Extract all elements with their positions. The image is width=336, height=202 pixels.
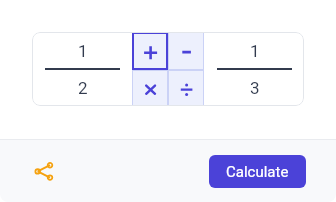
staticText: 1 — [250, 41, 260, 61]
button[interactable]: 1 — [32, 32, 132, 106]
button[interactable]: Multiply — [132, 70, 168, 106]
button[interactable]: Calculate — [209, 155, 306, 188]
staticText: 1 — [78, 41, 88, 61]
button[interactable]: Share — [28, 155, 60, 187]
button[interactable]: 1 — [204, 32, 304, 106]
staticText: 2 — [78, 78, 88, 98]
button[interactable]: Plus — [132, 32, 168, 70]
staticText: Calculate — [226, 163, 289, 181]
staticText: 3 — [250, 78, 260, 98]
button[interactable]: Divide — [168, 70, 204, 106]
button[interactable]: Minus — [168, 32, 204, 70]
